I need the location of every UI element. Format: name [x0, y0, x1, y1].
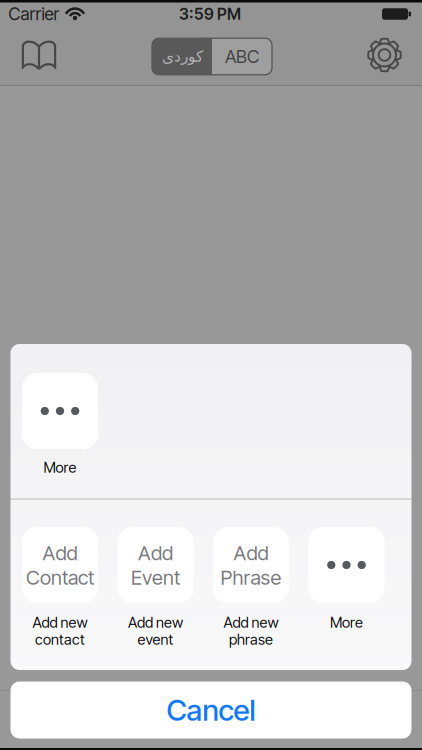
button[interactable]: Cancel: [10, 681, 411, 738]
button[interactable]: ABC: [212, 38, 272, 75]
staticText: Phrase: [220, 565, 281, 590]
button[interactable]: Add new: [205, 527, 297, 649]
staticText: کوردی: [161, 48, 202, 65]
button[interactable]: Add new: [14, 527, 106, 649]
staticText: Contact: [26, 565, 94, 590]
staticText: Add: [233, 541, 268, 565]
staticText: ABC: [225, 46, 259, 67]
staticText: Add new: [223, 614, 278, 631]
button[interactable]: کوردی: [152, 38, 212, 75]
staticText: Carrier: [8, 3, 59, 24]
staticText: Add: [42, 541, 77, 565]
staticText: Add new: [128, 614, 183, 631]
button[interactable]: Browse phrases: [22, 40, 56, 70]
staticText: Event: [131, 565, 180, 590]
staticText: 3:59 PM: [179, 4, 241, 24]
staticText: More: [330, 614, 363, 631]
staticText: phrase: [229, 631, 273, 648]
staticText: contact: [35, 631, 85, 648]
button[interactable]: Settings: [366, 37, 402, 73]
staticText: event: [137, 631, 173, 648]
button[interactable]: More sharing options: [14, 373, 106, 495]
staticText: Add: [138, 541, 173, 565]
staticText: Cancel: [166, 692, 255, 728]
button[interactable]: Add new: [109, 527, 201, 649]
button[interactable]: More actions: [300, 527, 392, 649]
staticText: Add new: [32, 614, 87, 631]
staticText: More: [43, 459, 76, 476]
